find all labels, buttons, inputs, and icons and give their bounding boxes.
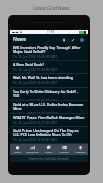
button[interactable]: Gold Prices Unchanged On The Day as U.S.…	[10, 127, 88, 144]
staticText: Powered by: Gold News Network	[29, 157, 69, 161]
staticText: WHATS' Pours Firm Bullish Manages Mine	[13, 115, 85, 120]
button[interactable]: Gold at a 98-oz U.S. Dollar Index Bounce…	[10, 101, 88, 114]
button[interactable]: Home	[10, 144, 25, 155]
staticText: Live Quotes	[26, 151, 39, 154]
staticText: Latest Gold News	[33, 5, 70, 11]
staticText: Messages	[75, 151, 86, 154]
staticText: Fri, 26 Jun 2020 12:27:00 GMT	[13, 121, 58, 125]
button[interactable]: Calendar	[56, 144, 72, 155]
button[interactable]: WHATS' Pours Firm Bullish Manages Mine	[10, 114, 88, 127]
staticText: Fri, 26 Jun 2020 15:20:00 GMT	[13, 68, 58, 72]
button[interactable]: Live Quotes	[25, 144, 40, 155]
staticText: Will Investors Finally Say 'Enough' Afte…	[13, 45, 85, 54]
staticText: Wait Mr. Wall St. has been standing	[13, 75, 73, 80]
staticText: Home	[14, 151, 21, 154]
button[interactable]: Notifications	[59, 35, 68, 44]
button[interactable]: Will Investors Finally Say 'Enough' Afte…	[10, 44, 88, 61]
staticText: Gold at a 98-oz U.S. Dollar Index Bounce…	[13, 102, 85, 111]
staticText: Gold Prices Unchanged On The Day as U.S.…	[13, 128, 85, 137]
staticText: Calendar	[59, 151, 69, 154]
staticText: Fri, 26 Jun 2020 12:06:00 GMT	[13, 138, 58, 142]
button[interactable]: Charts	[40, 144, 56, 155]
button[interactable]: Too Early To Write Obituary for Gold? - …	[10, 88, 88, 101]
button[interactable]: Wait Mr. Wall St. has been standing	[10, 74, 88, 88]
button[interactable]: Settings	[77, 35, 86, 44]
button[interactable]: Messages	[72, 144, 88, 155]
staticText: Charts	[45, 151, 52, 154]
staticText: 17:58	[47, 30, 55, 34]
staticText: Fri, 26 Jun 2020 15:45:00 GMT	[13, 55, 58, 59]
staticText: Fri, 26 Jun 2020 14:50:00 GMT	[13, 81, 58, 85]
button[interactable]: A New Gold Rush?	[10, 61, 88, 74]
button[interactable]: Edit	[68, 35, 77, 44]
staticText: Fri, 26 Jun 2020 13:30:00 GMT	[13, 112, 58, 114]
staticText: Fri, 26 Jun 2020 14:05:00 GMT	[13, 99, 58, 101]
staticText: News	[13, 36, 27, 43]
staticText: A New Gold Rush?	[13, 62, 44, 67]
staticText: Too Early To Write Obituary for Gold? - …	[13, 89, 85, 98]
